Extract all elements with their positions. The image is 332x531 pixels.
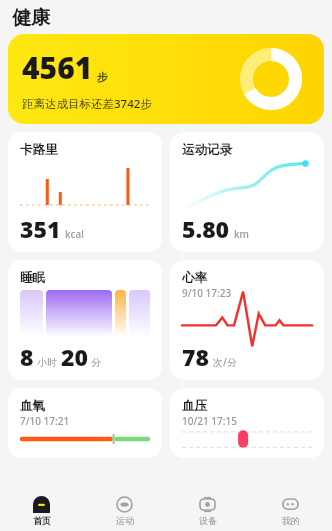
button[interactable]: 我的	[249, 490, 332, 531]
button[interactable]: 血压	[170, 388, 324, 458]
button[interactable]: 心率	[170, 260, 324, 380]
button[interactable]: 设备	[166, 490, 249, 531]
staticText: 10/21 17:15	[182, 414, 237, 428]
other: 首页	[33, 496, 50, 513]
button[interactable]: 4561	[8, 34, 324, 124]
staticText: 9/10 17:23	[182, 286, 232, 300]
staticText: 首页	[33, 515, 51, 526]
button[interactable]: 血氧	[8, 388, 162, 458]
staticText: 血压	[182, 398, 207, 414]
other: 运动	[116, 496, 133, 513]
staticText: 351	[20, 213, 61, 244]
staticText: 心率	[182, 270, 207, 286]
staticText: 步	[97, 70, 108, 84]
staticText: kcal	[65, 227, 84, 241]
staticText: 5.80	[182, 213, 230, 244]
staticText: km	[234, 227, 250, 241]
other: 设备	[199, 496, 216, 513]
staticText: 血氧	[20, 398, 45, 414]
staticText: 7/10 17:21	[20, 414, 70, 428]
staticText: 设备	[199, 515, 217, 526]
staticText: 运动	[116, 515, 134, 526]
staticText: 我的	[282, 515, 300, 526]
button[interactable]: 首页	[0, 490, 83, 531]
staticText: 距离达成目标还差3742步	[22, 96, 152, 112]
staticText: 运动记录	[182, 142, 232, 158]
staticText: 20	[61, 341, 88, 372]
staticText: 次/分	[213, 355, 237, 369]
staticText: 78	[182, 341, 209, 372]
staticText: 分	[91, 356, 101, 369]
staticText: 卡路里	[20, 142, 58, 158]
button[interactable]: 卡路里	[8, 132, 162, 252]
other: 我的	[282, 496, 299, 513]
staticText: 8	[20, 341, 34, 372]
staticText: 小时	[37, 356, 57, 369]
staticText: 睡眠	[20, 270, 45, 286]
staticText: 健康	[12, 6, 50, 30]
button[interactable]: 睡眠	[8, 260, 162, 380]
button[interactable]: 运动	[83, 490, 166, 531]
staticText: 4561	[22, 47, 93, 88]
button[interactable]: 运动记录	[170, 132, 324, 252]
